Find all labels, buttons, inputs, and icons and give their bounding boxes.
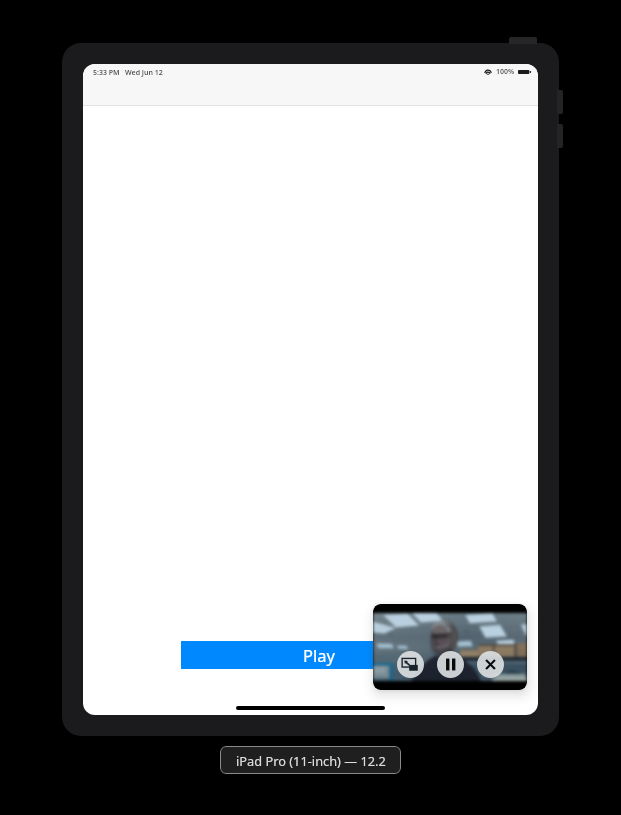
staticText: 5:33 PM Wed Jun 12 bbox=[93, 68, 163, 78]
button[interactable]: Play bbox=[181, 641, 457, 669]
button[interactable]: iPad Pro (11-inch) — 12.2 bbox=[220, 746, 401, 774]
staticText: Play bbox=[303, 644, 335, 666]
staticText: iPad Pro (11-inch) — 12.2 bbox=[236, 752, 386, 769]
button[interactable]: Close bbox=[477, 651, 504, 678]
button[interactable]: Pause bbox=[437, 651, 464, 678]
staticText: 100% bbox=[496, 67, 515, 77]
button[interactable]: Restore to full screen bbox=[397, 651, 424, 678]
